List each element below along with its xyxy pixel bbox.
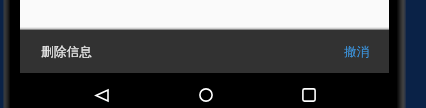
- button[interactable]: Recent apps: [295, 81, 323, 108]
- button[interactable]: Back: [88, 81, 116, 108]
- staticText: 删除信息: [41, 44, 93, 60]
- button[interactable]: 删除信息: [20, 30, 389, 73]
- button[interactable]: 撤消: [323, 30, 389, 73]
- staticText: 撤消: [344, 44, 370, 60]
- button[interactable]: Home: [192, 81, 220, 108]
